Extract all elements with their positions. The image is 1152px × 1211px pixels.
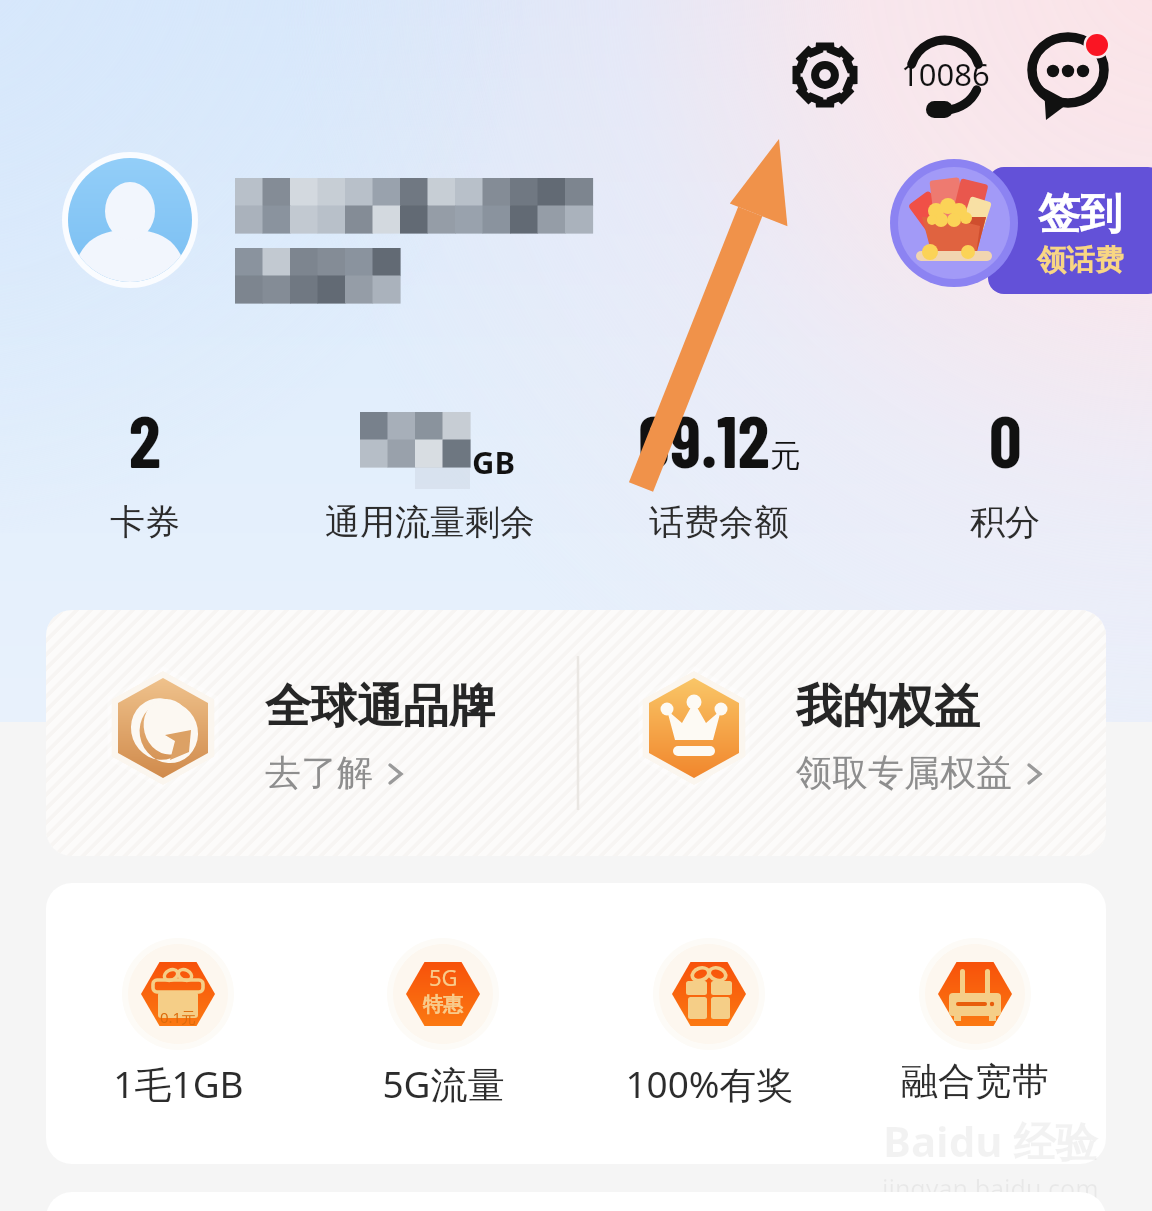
button[interactable]: Settings xyxy=(785,35,865,115)
staticText: 签到 xyxy=(1038,188,1122,241)
staticText: 5G xyxy=(429,962,458,992)
staticText: 全球通品牌 xyxy=(265,678,495,736)
button[interactable]: Messages xyxy=(1028,30,1112,114)
staticText: 卡券 xyxy=(110,500,180,544)
staticText: 话费余额 xyxy=(649,500,789,544)
staticText: 去了解 xyxy=(265,750,373,795)
staticText: 融合宽带 xyxy=(901,1058,1049,1105)
staticText: 1毛1GB xyxy=(113,1058,244,1109)
button[interactable]: Profile avatar xyxy=(60,150,200,290)
staticText: 领取专属权益 xyxy=(796,750,1012,795)
staticText: 元 xyxy=(770,436,801,475)
staticText: 0.1元 xyxy=(145,1007,211,1027)
staticText: GB xyxy=(472,441,516,483)
staticText: 特惠 xyxy=(423,992,463,1017)
staticText: 100%有奖 xyxy=(625,1058,794,1109)
button[interactable]: 签到 xyxy=(884,152,1152,298)
button[interactable]: 2 xyxy=(0,400,305,550)
button[interactable]: 0 xyxy=(845,400,1152,550)
button[interactable]: 69.12 xyxy=(559,400,879,550)
button[interactable]: 全球通品牌 xyxy=(93,653,495,803)
button[interactable]: 5G流量 xyxy=(353,934,533,1134)
button[interactable]: 1毛1GB xyxy=(88,934,268,1134)
staticText: 0 xyxy=(989,396,1022,482)
button[interactable]: 我的权益 xyxy=(624,653,1048,803)
staticText: 通用流量剩余 xyxy=(325,500,535,544)
staticText: 69.12 xyxy=(638,396,770,482)
staticText: 积分 xyxy=(970,500,1040,544)
button[interactable]: 融合宽带 xyxy=(885,934,1065,1134)
staticText: 5G流量 xyxy=(382,1058,505,1109)
staticText: Baidu 经验 xyxy=(883,1112,1098,1169)
staticText: 10086 xyxy=(901,53,990,95)
button[interactable]: 100%有奖 xyxy=(619,934,799,1134)
staticText: 领话费 xyxy=(1037,242,1124,279)
staticText: jingyan.baidu.com xyxy=(882,1171,1099,1205)
staticText: 我的权益 xyxy=(796,678,980,736)
staticText: 2 xyxy=(129,396,161,482)
button[interactable]: 10086 customer service xyxy=(897,30,993,116)
